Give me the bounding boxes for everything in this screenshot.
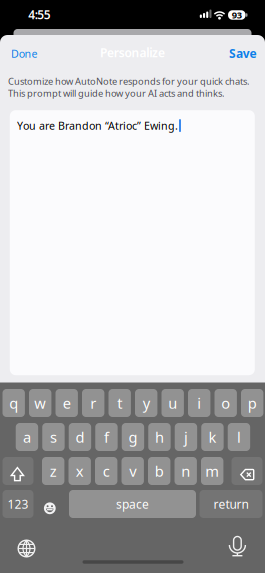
button[interactable]: x (68, 457, 91, 485)
button[interactable]: b (148, 457, 170, 485)
staticText: r (90, 393, 96, 413)
staticText: Personalize (100, 44, 165, 60)
button[interactable]: e (55, 389, 78, 417)
staticText: y (143, 393, 150, 413)
staticText: i (197, 393, 201, 413)
staticText: Done (11, 46, 37, 61)
staticText: Save (229, 45, 256, 61)
button[interactable]: l (228, 423, 250, 451)
button[interactable]: p (241, 389, 263, 417)
staticText: f (104, 427, 109, 447)
button[interactable]: o (214, 389, 237, 417)
button[interactable]: m (201, 457, 223, 485)
button[interactable]: j (175, 423, 197, 451)
staticText: Customize how AutoNote responds for your… (8, 75, 250, 87)
button[interactable]: r (82, 389, 104, 417)
button[interactable]: Next keyboard (12, 534, 40, 562)
button[interactable]: Delete (231, 457, 262, 485)
staticText: You are Brandon “Atrioc” Ewing. (17, 118, 178, 133)
staticText: return (213, 496, 248, 512)
staticText: a (23, 427, 31, 447)
button[interactable]: c (95, 457, 117, 485)
button[interactable]: v (121, 457, 144, 485)
button[interactable]: Shift (2, 457, 33, 485)
staticText: k (208, 427, 216, 447)
button[interactable]: i (188, 389, 210, 417)
staticText: b (155, 461, 164, 481)
staticText: This prompt will guide how your AI acts … (8, 87, 225, 99)
button[interactable]: Dictate (223, 532, 251, 560)
button[interactable]: Save (229, 45, 256, 61)
button[interactable]: a (16, 423, 38, 451)
button[interactable]: d (69, 423, 91, 451)
button[interactable]: return (199, 490, 262, 518)
staticText: p (248, 393, 257, 413)
staticText: o (221, 393, 230, 413)
staticText: t (117, 393, 122, 413)
staticText: l (237, 427, 241, 447)
button[interactable]: s (42, 423, 65, 451)
button[interactable]: u (161, 389, 184, 417)
button[interactable]: g (122, 423, 144, 451)
staticText: v (129, 461, 136, 481)
staticText: 123 (7, 496, 28, 512)
staticText: g (128, 427, 137, 447)
staticText: s (50, 427, 57, 447)
staticText: d (75, 427, 84, 447)
button[interactable]: q (2, 389, 25, 417)
staticText: w (34, 393, 46, 413)
staticText: h (155, 427, 164, 447)
button[interactable]: f (95, 423, 118, 451)
staticText: j (184, 427, 188, 447)
button[interactable]: 123 (2, 490, 33, 518)
button[interactable]: n (174, 457, 197, 485)
staticText: q (9, 393, 18, 413)
staticText: 93 (232, 9, 242, 21)
staticText: m (205, 461, 219, 481)
button[interactable]: h (148, 423, 171, 451)
button[interactable]: w (29, 389, 51, 417)
button[interactable]: z (42, 457, 64, 485)
button[interactable]: t (108, 389, 131, 417)
staticText: z (50, 461, 57, 481)
staticText: e (63, 393, 71, 413)
staticText: u (168, 393, 177, 413)
staticText: space (116, 496, 149, 512)
button[interactable]: y (135, 389, 157, 417)
staticText: 4:55 (28, 6, 51, 22)
staticText: c (103, 461, 110, 481)
button[interactable]: space (69, 490, 196, 518)
staticText: x (76, 461, 84, 481)
button[interactable]: Emoji (39, 494, 61, 522)
button[interactable]: Done (11, 46, 37, 61)
staticText: n (181, 461, 190, 481)
button[interactable]: k (201, 423, 224, 451)
